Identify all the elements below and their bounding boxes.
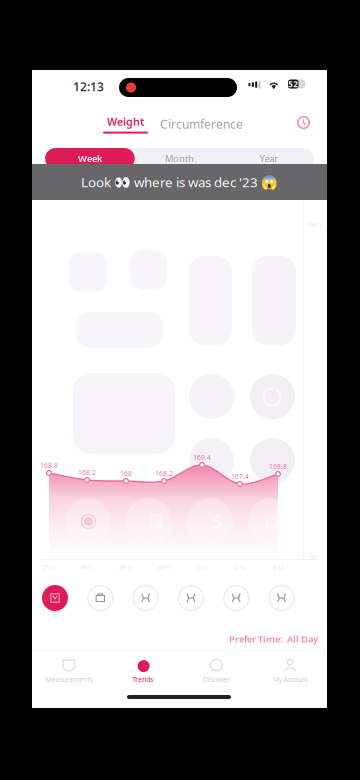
staticText: Look 👀 where is was dec '23 😱	[81, 173, 278, 191]
staticText: Discover	[203, 675, 230, 684]
staticText: Prefer Time: All Day	[229, 633, 318, 645]
button[interactable]: Waist	[178, 585, 204, 611]
staticText: 28/11	[80, 564, 94, 571]
button[interactable]: Chest	[133, 585, 159, 611]
button[interactable]: Weight	[103, 113, 148, 135]
staticText: Week	[78, 152, 102, 165]
button[interactable]: Prefer Time: All Day	[229, 633, 318, 645]
staticText: 168.2	[155, 469, 173, 478]
button[interactable]: Week	[45, 148, 135, 169]
staticText: 167.4	[231, 472, 249, 481]
button[interactable]: Hips	[223, 585, 249, 611]
button[interactable]: Discover	[179, 652, 253, 690]
staticText: 3/12	[272, 564, 283, 571]
button[interactable]: Trends	[106, 652, 180, 690]
button[interactable]: My Account	[253, 652, 327, 690]
staticText: 12:13	[73, 78, 104, 94]
staticText: 2/12	[234, 564, 245, 571]
staticText: Measurements	[45, 675, 92, 684]
button[interactable]: Thigh	[268, 585, 294, 611]
staticText: Year	[260, 152, 279, 165]
staticText: 27/11	[42, 564, 56, 571]
staticText: 29/11	[119, 564, 133, 571]
staticText: Trends	[132, 675, 153, 684]
staticText: Month	[165, 152, 194, 165]
staticText: 167	[309, 554, 318, 561]
staticText: 168	[120, 469, 132, 478]
staticText: Weight	[107, 114, 144, 129]
button[interactable]: Body fat	[87, 585, 113, 611]
staticText: 30/11	[157, 564, 171, 571]
staticText: 52	[288, 79, 298, 89]
staticText: 168.2	[78, 468, 96, 477]
staticText: 168.8	[269, 462, 287, 471]
staticText: 168.8	[40, 461, 58, 470]
button[interactable]: Measurements	[32, 652, 106, 690]
staticText: Circumference	[160, 116, 243, 132]
button[interactable]: Year	[224, 148, 314, 169]
button[interactable]: Weight	[42, 585, 68, 611]
staticText: 169.5	[308, 221, 321, 228]
button[interactable]: Circumference	[160, 113, 243, 135]
staticText: 169.4	[193, 453, 211, 462]
staticText: 1/12	[196, 564, 207, 571]
button[interactable]: Month	[135, 148, 224, 169]
staticText: My Account	[273, 675, 308, 684]
button[interactable]: History	[297, 116, 310, 129]
